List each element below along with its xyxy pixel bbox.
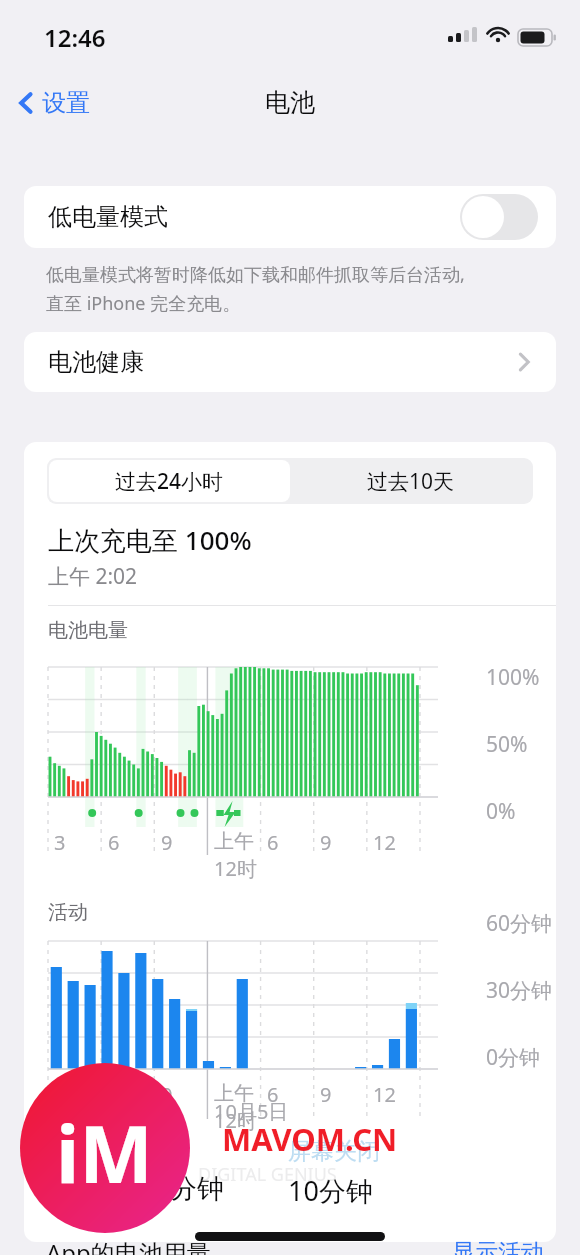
staticText: 60分钟 [486, 909, 553, 938]
staticText: 12 [373, 829, 396, 856]
staticText: 电池健康 [48, 347, 144, 377]
button[interactable]: 电池健康 [24, 332, 556, 392]
staticText: 6 [267, 829, 279, 856]
button[interactable]: 低电量模式 [24, 186, 556, 248]
staticText: 电池电量 [48, 618, 128, 643]
staticText: 设置 [42, 88, 90, 118]
staticText: 12:46 [44, 21, 106, 54]
staticText: 过去10天 [367, 467, 455, 496]
staticText: 9 [161, 829, 173, 856]
staticText: 上午 2:02 [48, 562, 138, 591]
staticText: 12 [373, 1081, 396, 1108]
staticText: 30分钟 [486, 976, 553, 1005]
staticText: 0分钟 [486, 1043, 541, 1072]
staticText: 分钟 [170, 1172, 224, 1206]
staticText: 100% [486, 663, 540, 692]
staticText: MAVOM.CN [222, 1118, 398, 1160]
button[interactable]: 过去24小时 [49, 460, 290, 502]
staticText: 6 [267, 1081, 279, 1108]
button[interactable]: 低电量模式开关 [460, 194, 538, 240]
staticText: 9 [161, 1081, 173, 1108]
staticText: 显示活动 [452, 1238, 544, 1255]
staticText: 低电量模式将暂时降低如下载和邮件抓取等后台活动, [46, 262, 465, 287]
staticText: 9 [320, 829, 332, 856]
staticText: iM [56, 1100, 153, 1206]
staticText: 屏幕关闭 [288, 1137, 380, 1166]
staticText: 电池 [265, 87, 315, 118]
staticText: DIGITAL GENIUS [198, 1162, 337, 1187]
staticText: 低电量模式 [48, 202, 168, 232]
staticText: 0% [486, 797, 516, 826]
staticText: App的电池用量 [46, 1236, 211, 1255]
staticText: 直至 iPhone 完全充电。 [46, 291, 241, 316]
staticText: 上午12时 [214, 1081, 267, 1134]
staticText: 上次充电至 100% [48, 522, 252, 558]
staticText: 上午12时 [214, 829, 267, 882]
staticText: 6 [108, 829, 120, 856]
staticText: 活动 [48, 900, 88, 925]
staticText: 50% [486, 730, 528, 759]
staticText: 3 [54, 829, 66, 856]
staticText: 过去24小时 [115, 467, 224, 496]
staticText: 10分钟 [288, 1172, 373, 1209]
staticText: 10月5日 [214, 1098, 289, 1125]
button[interactable]: 设置 [10, 82, 98, 124]
staticText: 9 [320, 1081, 332, 1108]
button[interactable]: 过去10天 [290, 460, 531, 502]
